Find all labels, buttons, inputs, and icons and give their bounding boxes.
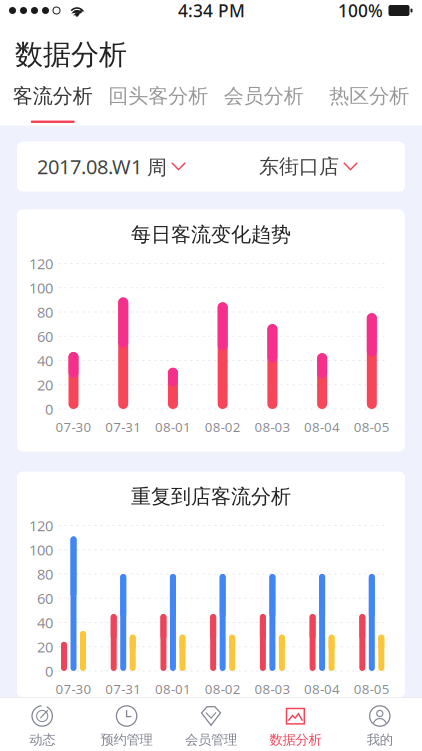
staticText: 60 (37, 588, 53, 608)
staticText: 100 (29, 540, 53, 559)
staticText: 08-03 (254, 680, 290, 698)
staticText: 40 (37, 613, 53, 632)
staticText: 07-31 (105, 680, 141, 698)
staticText: 预约管理 (101, 731, 153, 748)
staticText: 08-04 (304, 418, 340, 436)
button[interactable]: 会员管理 (169, 697, 253, 751)
staticText: 60 (37, 326, 53, 346)
button[interactable]: 东街口店 (246, 141, 371, 191)
staticText: 客流分析 (13, 84, 93, 108)
staticText: 40 (37, 351, 53, 370)
staticText: 08-05 (354, 680, 390, 698)
staticText: 08-04 (304, 680, 340, 698)
staticText: 会员管理 (185, 731, 237, 748)
staticText: 07-31 (105, 418, 141, 436)
staticText: 08-02 (205, 418, 241, 436)
staticText: 我的 (367, 731, 393, 748)
staticText: 20 (37, 375, 53, 394)
button[interactable]: 数据分析 (253, 697, 338, 751)
staticText: 2017.08.W1 周 (37, 153, 167, 180)
button[interactable]: 会员分析 (211, 85, 316, 127)
staticText: 07-30 (55, 680, 91, 698)
button[interactable]: 2017.08.W1 周 (24, 141, 199, 191)
staticText: 动态 (29, 731, 55, 748)
staticText: 回头客分析 (108, 84, 208, 108)
button[interactable]: 热区分析 (316, 85, 422, 127)
staticText: 东街口店 (259, 154, 339, 179)
staticText: 80 (37, 302, 53, 322)
staticText: 20 (37, 637, 53, 656)
staticText: 会员分析 (224, 84, 304, 108)
staticText: 0 (45, 399, 53, 419)
staticText: 80 (37, 564, 53, 584)
staticText: 热区分析 (329, 84, 409, 108)
button[interactable]: 我的 (338, 697, 422, 751)
staticText: 08-05 (354, 418, 390, 436)
staticText: 每日客流变化趋势 (131, 222, 291, 247)
button[interactable]: 客流分析 (0, 85, 105, 127)
staticText: 4:34 PM (178, 0, 245, 22)
staticText: 08-01 (155, 418, 191, 436)
staticText: 100% (338, 0, 383, 22)
staticText: 08-01 (155, 680, 191, 698)
button[interactable]: 预约管理 (84, 697, 169, 751)
staticText: 08-02 (205, 680, 241, 698)
staticText: 0 (45, 661, 53, 681)
staticText: 100 (29, 278, 53, 297)
staticText: 120 (29, 254, 53, 273)
staticText: 数据分析 (15, 37, 127, 72)
staticText: 120 (29, 516, 53, 535)
staticText: 数据分析 (269, 731, 321, 748)
staticText: 07-30 (55, 418, 91, 436)
staticText: 08-03 (254, 418, 290, 436)
button[interactable]: 动态 (0, 697, 84, 751)
button[interactable]: 回头客分析 (105, 85, 211, 127)
staticText: 重复到店客流分析 (131, 484, 291, 509)
